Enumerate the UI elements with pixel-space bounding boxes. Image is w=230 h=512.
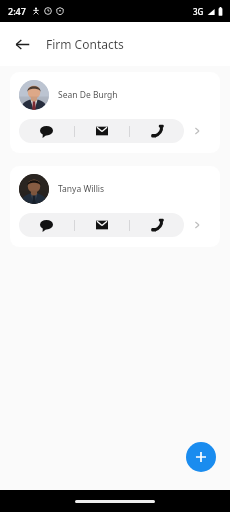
button[interactable]: Back <box>6 28 38 60</box>
button[interactable]: Add contact <box>186 442 216 472</box>
staticText: Tanya Willis <box>58 183 105 195</box>
button[interactable]: Tanya Willis <box>10 166 220 247</box>
button[interactable]: Open contact details <box>184 213 210 237</box>
button[interactable]: Message <box>19 119 74 143</box>
button[interactable]: Sean De Burgh <box>10 72 220 153</box>
button[interactable]: Email <box>75 213 129 237</box>
staticText: 3G <box>193 6 204 17</box>
staticText: Sean De Burgh <box>58 89 118 101</box>
button[interactable]: Call <box>130 213 184 237</box>
staticText: Firm Contacts <box>46 36 124 52</box>
staticText: 2:47 <box>8 5 26 17</box>
button[interactable]: Email <box>75 119 129 143</box>
button[interactable]: Call <box>130 119 184 143</box>
button[interactable]: Message <box>19 213 74 237</box>
button[interactable]: Open contact details <box>184 119 210 143</box>
